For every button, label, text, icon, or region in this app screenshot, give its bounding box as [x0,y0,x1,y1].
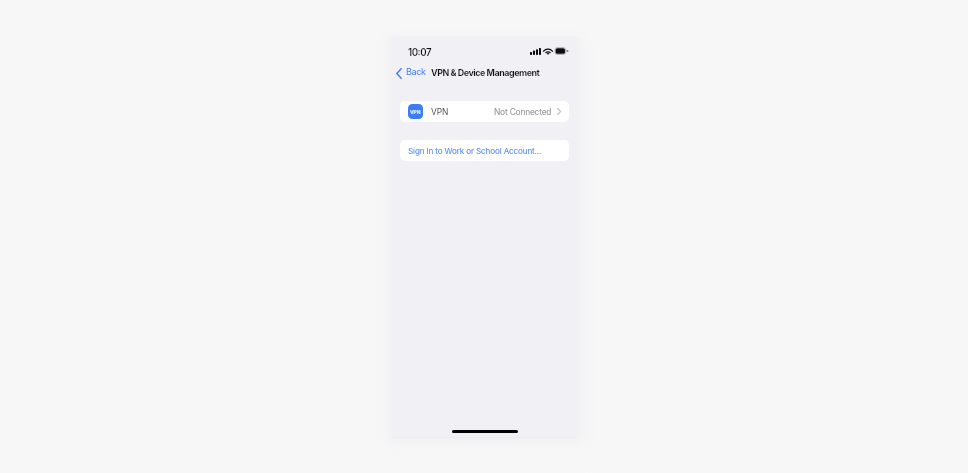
staticText: Back [406,66,426,77]
staticText: 10:07 [408,47,432,59]
staticText: VPN & Device Management [431,67,540,78]
staticText: VPN [410,109,421,115]
button[interactable]: Sign In to Work or School Account... [400,140,569,161]
other: Back [396,68,402,79]
staticText: Sign In to Work or School Account... [408,146,542,156]
button[interactable]: VPN [400,101,569,122]
staticText: Not Connected [494,107,552,117]
button[interactable]: Back [393,64,429,79]
staticText: VPN [431,107,449,117]
